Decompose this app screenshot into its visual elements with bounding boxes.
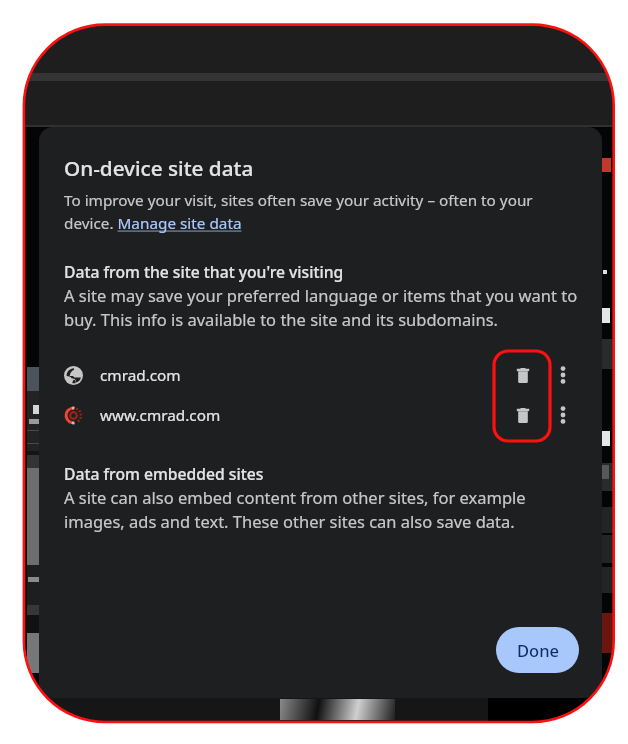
staticText: A site may save your preferred language … <box>64 284 594 331</box>
button[interactable]: cmrad.com <box>39 355 602 395</box>
staticText: Data from the site that you're visiting <box>64 261 344 282</box>
button[interactable]: Delete site data <box>500 355 545 395</box>
button[interactable]: More options <box>545 357 581 393</box>
button[interactable]: More options <box>545 397 581 433</box>
staticText: A site can also embed content from other… <box>64 486 564 533</box>
staticText: To improve your visit, sites often save … <box>64 190 544 234</box>
staticText: On-device site data <box>64 154 254 182</box>
staticText: Data from embedded sites <box>64 463 264 484</box>
button[interactable]: Delete site data <box>500 395 545 435</box>
button[interactable]: www.cmrad.com <box>39 395 602 435</box>
staticText: Done <box>517 639 559 661</box>
staticText: cmrad.com <box>100 365 181 386</box>
button[interactable]: Done <box>496 627 579 673</box>
staticText: www.cmrad.com <box>100 405 221 426</box>
